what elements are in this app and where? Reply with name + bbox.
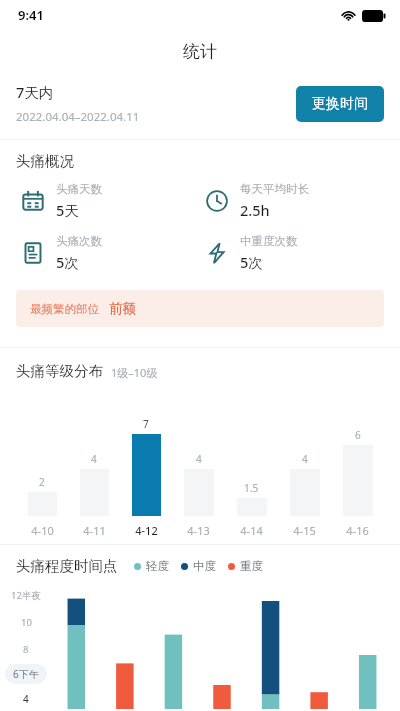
staticText: 1.5 — [244, 481, 259, 495]
staticText: 7 — [143, 417, 149, 431]
staticText: 前额 — [109, 300, 136, 317]
staticText: 1级–10级 — [111, 365, 158, 380]
button[interactable]: 2 — [16, 396, 68, 516]
button[interactable]: 4 — [172, 396, 225, 516]
staticText: 8 — [23, 643, 29, 656]
staticText: 4 — [302, 452, 308, 466]
staticText: 10 — [21, 616, 32, 629]
staticText: 4-11 — [83, 523, 106, 538]
staticText: 4-16 — [346, 523, 369, 538]
staticText: 2.5h — [240, 200, 270, 220]
staticText: 头痛程度时间点 — [16, 557, 118, 575]
staticText: 重度 — [240, 559, 263, 573]
staticText: 4-15 — [293, 523, 316, 538]
staticText: 4-10 — [31, 523, 54, 538]
button[interactable]: 每天平均时长 — [200, 182, 384, 220]
staticText: 5次 — [240, 252, 263, 272]
button[interactable]: 7 — [120, 396, 172, 516]
button[interactable]: 6 — [331, 396, 384, 516]
button[interactable]: 4 — [68, 396, 120, 516]
staticText: 头痛次数 — [56, 234, 102, 248]
staticText: 12半夜 — [11, 589, 41, 602]
staticText: 4 — [23, 692, 29, 706]
staticText: 头痛概况 — [16, 152, 74, 170]
staticText: 5次 — [56, 252, 79, 272]
staticText: 9:41 — [18, 6, 44, 24]
staticText: 5天 — [56, 200, 79, 220]
staticText: 4 — [91, 452, 97, 466]
staticText: 2 — [39, 475, 45, 489]
staticText: 头痛天数 — [56, 182, 102, 196]
staticText: 4-12 — [135, 523, 158, 538]
staticText: 最频繁的部位 — [30, 302, 99, 316]
staticText: 6 — [355, 428, 361, 442]
staticText: 中度 — [193, 559, 216, 573]
button[interactable]: 1.5 — [225, 396, 278, 516]
staticText: 6下午 — [13, 667, 39, 681]
staticText: 头痛等级分布 — [16, 362, 103, 380]
staticText: 4-13 — [187, 523, 210, 538]
staticText: 4-14 — [240, 523, 263, 538]
staticText: 更换时间 — [312, 95, 368, 113]
staticText: 每天平均时长 — [240, 182, 309, 196]
button[interactable]: 中重度次数 — [200, 234, 384, 272]
button[interactable]: 最频繁的部位 — [16, 290, 384, 327]
staticText: 4 — [196, 452, 202, 466]
staticText: 中重度次数 — [240, 234, 298, 248]
button[interactable]: 头痛天数 — [16, 182, 200, 220]
staticText: 统计 — [183, 41, 217, 62]
staticText: 2022.04.04–2022.04.11 — [16, 109, 140, 125]
button[interactable]: 更换时间 — [296, 86, 384, 122]
staticText: 7天内 — [16, 82, 54, 102]
button[interactable]: 头痛次数 — [16, 234, 200, 272]
button[interactable]: 4 — [278, 396, 331, 516]
staticText: 轻度 — [146, 559, 169, 573]
